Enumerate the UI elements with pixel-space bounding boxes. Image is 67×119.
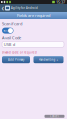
staticText: Avail Code [2,35,21,40]
staticText: Scan if card [2,21,22,26]
staticText: Agility for Android [11,6,38,10]
staticText: Fields are required [17,13,50,18]
button[interactable]: Handwriting + [33,56,63,63]
staticText: Invalid code or required [2,51,37,54]
staticText: Add Primary [8,58,24,61]
staticText: Yes [3,29,7,32]
button[interactable]: Scan if card toggle [2,28,13,34]
staticText: ‹ [1,3,3,13]
staticText: Cancel [50,114,59,118]
staticText: USB d [4,42,15,47]
button[interactable]: Cancel [44,115,64,118]
button[interactable]: Add Primary [2,56,30,63]
staticText: Handwriting + [38,58,58,61]
staticText: 15:37 [56,0,65,5]
button[interactable]: Back [0,4,4,12]
